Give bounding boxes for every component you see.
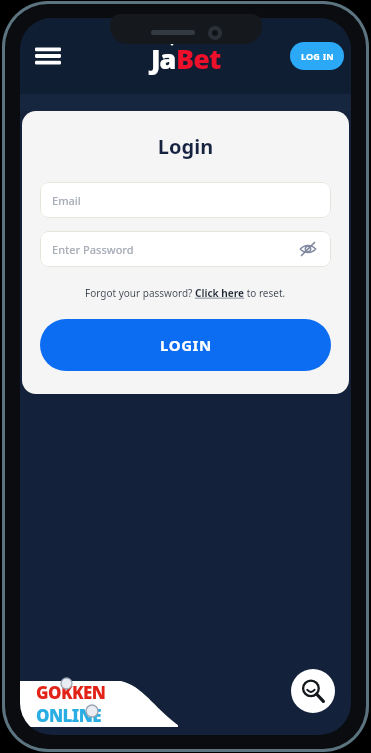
button[interactable]: LOGIN bbox=[40, 319, 331, 371]
staticText: Enter Password bbox=[52, 242, 134, 257]
staticText: LOGIN bbox=[160, 335, 212, 355]
staticText: Ja bbox=[151, 40, 176, 77]
staticText: Login bbox=[40, 133, 331, 160]
button[interactable]: LOG IN bbox=[290, 42, 344, 70]
button[interactable]: Email bbox=[40, 182, 331, 218]
button[interactable]: Menu bbox=[26, 34, 70, 78]
button[interactable]: Enter Password bbox=[40, 231, 331, 267]
staticText: Bet bbox=[176, 40, 221, 77]
staticText: LOG IN bbox=[301, 50, 334, 62]
staticText: GOKKEN bbox=[36, 681, 106, 704]
staticText: Email bbox=[52, 193, 81, 208]
button[interactable]: Show password bbox=[297, 238, 319, 260]
button[interactable]: Forgot your password? Click here to rese… bbox=[85, 286, 286, 300]
staticText: ONLINE bbox=[36, 704, 102, 725]
button[interactable]: Search bbox=[291, 669, 335, 713]
